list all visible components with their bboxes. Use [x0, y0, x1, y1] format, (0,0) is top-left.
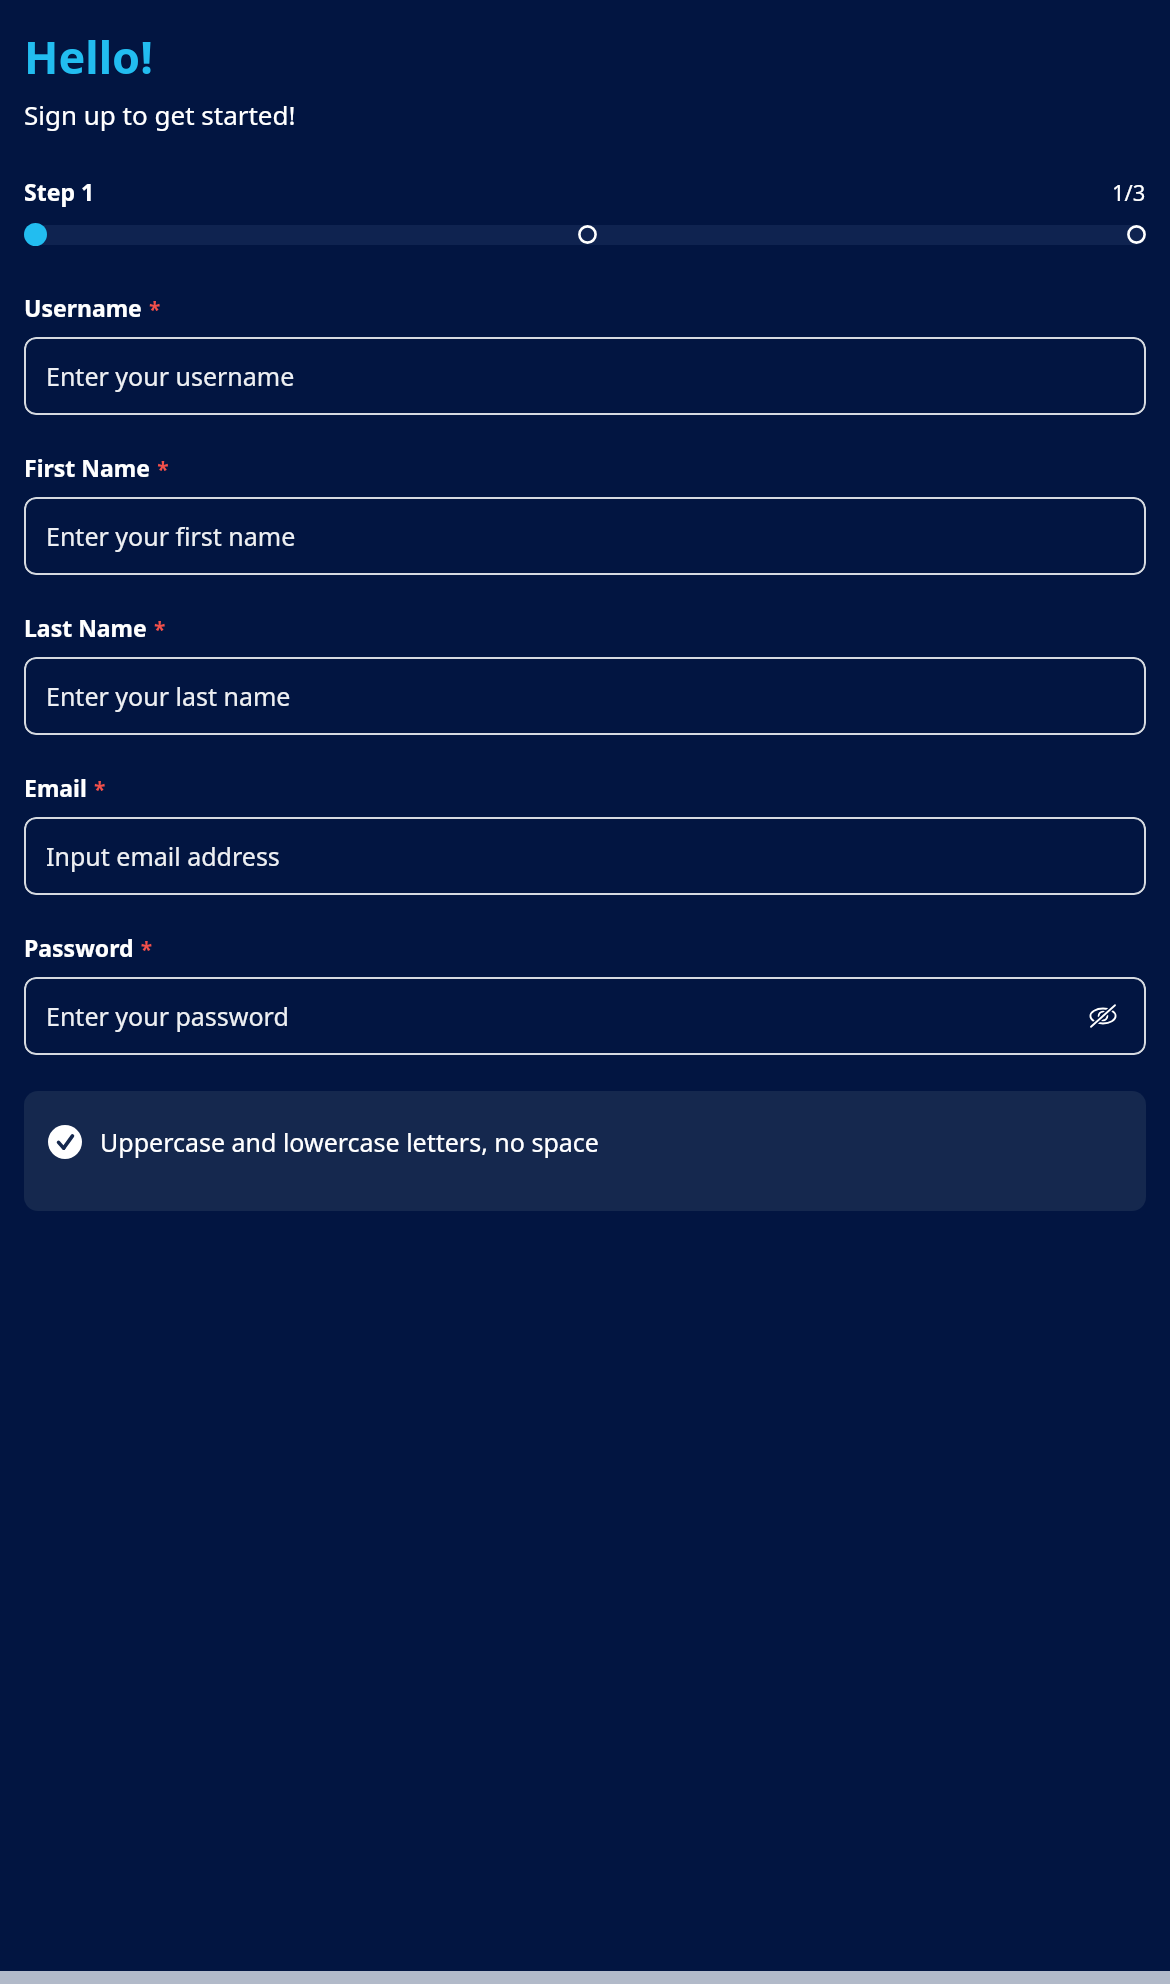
staticText: Sign up to get started!: [24, 97, 296, 132]
staticText: Enter your last name: [46, 679, 291, 713]
staticText: Hello!: [24, 26, 153, 87]
staticText: Password *: [24, 932, 153, 963]
button[interactable]: Step 3: [1127, 225, 1146, 244]
button[interactable]: Enter your password: [24, 977, 1146, 1055]
button[interactable]: Enter your first name: [24, 497, 1146, 575]
button[interactable]: Step 1 current: [24, 223, 47, 246]
staticText: Enter your password: [46, 999, 289, 1033]
staticText: First Name *: [24, 452, 169, 483]
button[interactable]: Input email address: [24, 817, 1146, 895]
staticText: Uppercase and lowercase letters, no spac…: [100, 1125, 599, 1159]
button[interactable]: Show password: [1082, 995, 1124, 1037]
button[interactable]: Step 2: [578, 225, 597, 244]
staticText: 1/3: [1112, 177, 1146, 207]
button[interactable]: Enter your last name: [24, 657, 1146, 735]
staticText: Email *: [24, 772, 106, 803]
staticText: Enter your first name: [46, 519, 296, 553]
staticText: Enter your username: [46, 359, 295, 393]
staticText: Step 1: [24, 176, 95, 207]
staticText: Username *: [24, 292, 161, 323]
button[interactable]: Enter your username: [24, 337, 1146, 415]
button[interactable]: Uppercase and lowercase letters, no spac…: [24, 1091, 1146, 1211]
staticText: Input email address: [46, 839, 280, 873]
staticText: Last Name *: [24, 612, 166, 643]
